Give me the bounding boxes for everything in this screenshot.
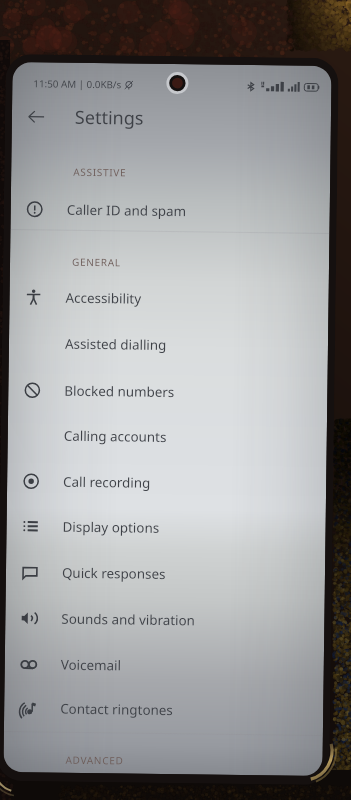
button[interactable]: Call recording	[7, 458, 326, 507]
staticText: Calling accounts	[64, 427, 167, 446]
staticText: Assisted dialling	[65, 335, 167, 354]
staticText: Call recording	[63, 473, 151, 492]
staticText: Blocked numbers	[64, 382, 174, 401]
button[interactable]: Voicemail	[4, 641, 324, 690]
staticText: Accessibility	[65, 289, 142, 308]
button[interactable]: Quick responses	[6, 549, 325, 598]
staticText: ADVANCED	[65, 753, 124, 767]
button[interactable]: Sounds and vibration	[5, 595, 325, 644]
button[interactable]: Contact ringtones	[4, 685, 323, 734]
button[interactable]: Assisted dialling	[9, 320, 328, 369]
button[interactable]: Back	[18, 99, 54, 133]
staticText: GENERAL	[72, 255, 121, 269]
button[interactable]: Caller ID and spam	[10, 186, 330, 235]
staticText: Settings	[75, 105, 144, 131]
staticText: ASSISTIVE	[73, 165, 127, 179]
button[interactable]: Accessibility	[9, 274, 329, 323]
button[interactable]: Calling accounts	[7, 412, 327, 461]
staticText: Sounds and vibration	[61, 610, 195, 629]
staticText: Quick responses	[62, 564, 166, 583]
staticText: Caller ID and spam	[67, 201, 187, 220]
button[interactable]: Display options	[6, 503, 326, 552]
staticText: 11:50 AM | 0.0KB/s	[33, 77, 121, 91]
staticText: Contact ringtones	[60, 700, 173, 719]
staticText: Display options	[62, 518, 160, 537]
button[interactable]: Blocked numbers	[8, 367, 328, 416]
staticText: Voicemail	[61, 656, 122, 674]
